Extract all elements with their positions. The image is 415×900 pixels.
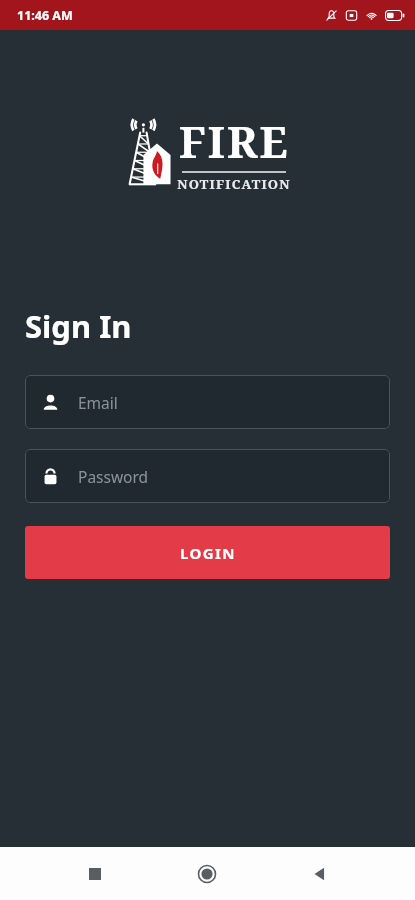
staticText: Email (78, 392, 118, 413)
button[interactable]: Home (187, 854, 227, 894)
staticText: NOTIFICATION (177, 175, 291, 193)
staticText: Sign In (25, 305, 132, 347)
staticText: FIRE (179, 112, 290, 171)
staticText: LOGIN (180, 543, 236, 563)
button[interactable]: Password (25, 449, 390, 503)
button[interactable]: Recents (75, 854, 115, 894)
staticText: Password (78, 466, 149, 487)
staticText: 11:46 AM (17, 7, 73, 24)
button[interactable]: LOGIN (25, 526, 390, 579)
button[interactable]: Back (299, 854, 339, 894)
button[interactable]: Email (25, 375, 390, 429)
